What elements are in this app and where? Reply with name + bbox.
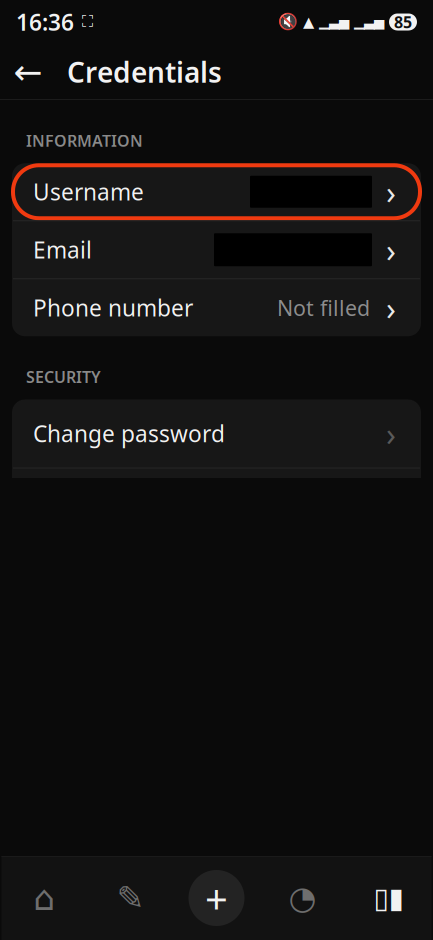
- staticText: Credentials: [67, 53, 222, 91]
- button[interactable]: Phone number: [12, 279, 421, 336]
- staticText: ⌂: [33, 878, 55, 918]
- staticText: ⛶: [82, 14, 93, 30]
- staticText: ◔: [288, 880, 316, 916]
- staticText: 16:36: [16, 7, 74, 37]
- staticText: ▲: [303, 14, 314, 30]
- staticText: ▯▮: [373, 882, 403, 914]
- staticText: ▁▃▅: [319, 14, 349, 29]
- staticText: SECURITY: [26, 366, 101, 387]
- staticText: ›: [386, 286, 396, 329]
- button[interactable]: Username: [12, 163, 421, 220]
- button[interactable]: Home: [1, 860, 87, 936]
- staticText: ›: [386, 228, 396, 271]
- staticText: Change password: [33, 418, 225, 448]
- staticText: Not filled: [277, 294, 370, 322]
- staticText: 85: [394, 11, 412, 33]
- staticText: ▁▃▅: [354, 14, 384, 29]
- staticText: 🔇: [278, 13, 298, 31]
- staticText: Email: [33, 235, 92, 265]
- button[interactable]: Two–factor authentication: [12, 468, 421, 536]
- button[interactable]: Edit: [87, 860, 173, 936]
- staticText: ←: [13, 52, 42, 92]
- staticText: Phone number: [33, 293, 193, 323]
- button[interactable]: Library: [345, 860, 431, 936]
- staticText: +: [205, 871, 228, 924]
- staticText: INFORMATION: [26, 130, 143, 151]
- button[interactable]: Add: [173, 860, 259, 936]
- button[interactable]: Activity: [259, 860, 345, 936]
- button[interactable]: Change password: [12, 399, 421, 467]
- staticText: Username: [33, 177, 144, 207]
- button[interactable]: Back: [6, 50, 50, 94]
- staticText: ✎: [116, 879, 144, 917]
- button[interactable]: Email: [12, 221, 421, 278]
- staticText: ›: [386, 170, 396, 213]
- staticText: ›: [386, 412, 396, 455]
